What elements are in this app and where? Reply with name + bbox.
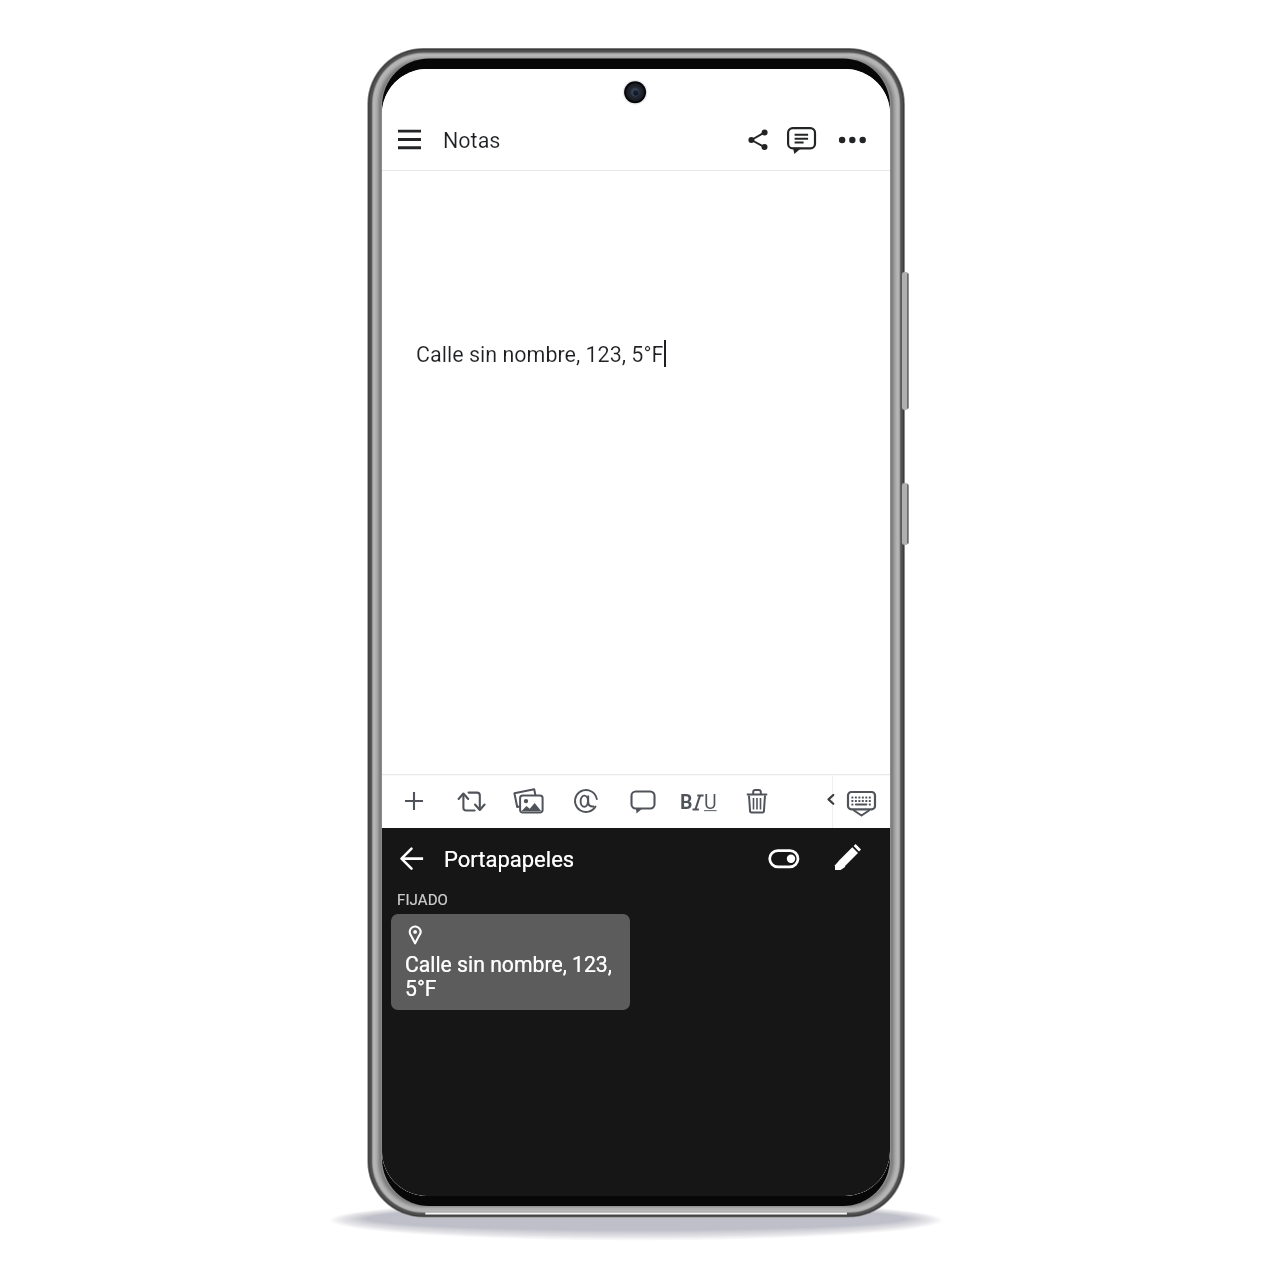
button[interactable]: Hide keyboard [838, 781, 882, 825]
staticText: Notas [443, 128, 501, 153]
button[interactable]: Mention [563, 783, 609, 829]
button[interactable]: Repeat [448, 783, 494, 829]
button[interactable]: Delete [734, 783, 780, 829]
button[interactable]: Calle sin nombre, 123, 5°F [391, 914, 630, 1010]
button[interactable]: Text style [677, 783, 723, 829]
staticText: B [680, 791, 693, 814]
button[interactable]: Comment [620, 783, 666, 829]
staticText: FIJADO [397, 891, 449, 909]
button[interactable]: Share [736, 118, 780, 162]
button[interactable]: Portapapeles [444, 847, 575, 873]
staticText: Calle sin nombre, 123, 5°F [405, 952, 612, 1002]
button[interactable]: Insert image [506, 783, 552, 829]
staticText: Calle sin nombre, 123, 5°F [416, 342, 664, 367]
button[interactable]: Edit [828, 838, 872, 882]
button[interactable]: Add new [391, 783, 437, 829]
button[interactable]: More options [822, 118, 866, 162]
button[interactable] [382, 171, 890, 774]
button[interactable]: Navigation menu [388, 116, 432, 160]
button[interactable]: Notas [443, 128, 501, 153]
staticText: Portapapeles [444, 847, 575, 873]
button[interactable]: Comments [782, 119, 826, 163]
button[interactable]: Toggle clipboard sync [762, 838, 806, 882]
staticText: U [704, 791, 717, 814]
button[interactable]: Back [394, 837, 438, 881]
